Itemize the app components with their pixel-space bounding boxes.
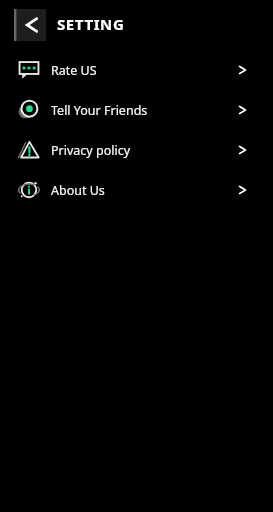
button[interactable]: Privacy policy xyxy=(0,130,273,170)
button[interactable]: Back xyxy=(14,9,46,41)
staticText: SETTING xyxy=(57,14,125,34)
staticText: Tell Your Friends xyxy=(51,102,148,119)
button[interactable]: Tell Your Friends xyxy=(0,90,273,130)
button[interactable]: About Us xyxy=(0,170,273,210)
button[interactable]: Rate US xyxy=(0,50,273,90)
staticText: About Us xyxy=(51,182,105,199)
staticText: Privacy policy xyxy=(51,142,131,159)
staticText: Rate US xyxy=(51,62,97,79)
